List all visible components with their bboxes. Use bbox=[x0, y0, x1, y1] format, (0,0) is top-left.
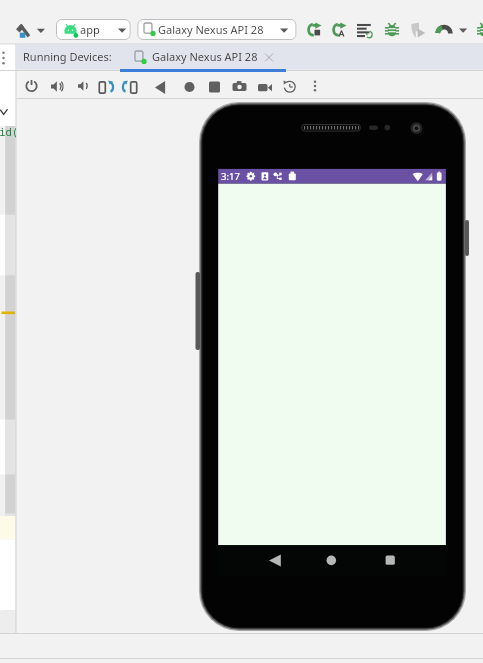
button[interactable]: Back bbox=[255, 546, 297, 576]
button[interactable]: Overview bbox=[208, 78, 222, 93]
button[interactable]: Volume down bbox=[77, 78, 91, 93]
staticText: oid( bbox=[0, 126, 16, 139]
button[interactable]: Home bbox=[312, 546, 352, 576]
button[interactable]: More bbox=[311, 78, 322, 93]
button[interactable]: Power bbox=[24, 78, 39, 93]
button[interactable]: Rotate left bbox=[98, 78, 116, 93]
button[interactable]: Debug bbox=[385, 22, 400, 38]
button[interactable]: Run with profiler bbox=[410, 22, 427, 38]
button[interactable]: Build options bbox=[36, 27, 46, 35]
button[interactable]: Galaxy Nexus API 28 device selector bbox=[137, 19, 297, 40]
button[interactable]: Take screenshot bbox=[231, 78, 248, 93]
button[interactable]: Volume up bbox=[50, 78, 66, 93]
button[interactable]: Device history bbox=[282, 78, 298, 93]
button[interactable]: Back bbox=[154, 78, 170, 93]
button[interactable]: Run with configuration bbox=[332, 22, 348, 38]
button[interactable]: Close tab bbox=[262, 52, 276, 64]
staticText: Galaxy Nexus API 28 bbox=[158, 22, 264, 37]
button[interactable]: Options bbox=[0, 45, 16, 70]
staticText: app bbox=[80, 22, 100, 37]
button[interactable]: More options bbox=[456, 26, 467, 35]
button[interactable]: Build bbox=[16, 22, 31, 38]
button[interactable]: Debug app bbox=[476, 22, 483, 38]
button[interactable]: Home bbox=[182, 78, 197, 93]
staticText: Running Devices: bbox=[23, 49, 112, 64]
button[interactable]: Record screen bbox=[257, 78, 274, 93]
button[interactable]: app module selector bbox=[56, 19, 131, 40]
button[interactable]: Recents bbox=[370, 546, 410, 576]
button[interactable]: Run bbox=[307, 22, 323, 38]
staticText: Galaxy Nexus API 28 bbox=[152, 49, 258, 64]
staticText: 3:17 bbox=[221, 170, 240, 183]
button[interactable]: App inspection bbox=[436, 22, 453, 38]
button[interactable]: Logcat bbox=[357, 22, 374, 38]
button[interactable]: Galaxy Nexus API 28 tab bbox=[118, 45, 288, 70]
button[interactable]: Rotate right bbox=[121, 78, 140, 93]
